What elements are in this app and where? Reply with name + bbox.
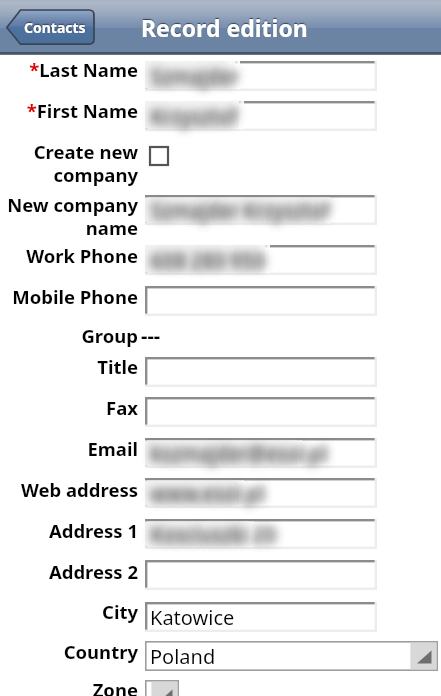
staticText: 608 280 950 [151, 247, 265, 274]
button[interactable]: New company name [145, 195, 377, 225]
staticText: Szmajder [151, 63, 239, 90]
staticText: kszmajder@esol.pl [151, 440, 327, 467]
staticText: Kosciuszki 20 [151, 521, 276, 548]
button[interactable]: Country [145, 641, 438, 671]
staticText: kszmajder@esol.pl [151, 440, 327, 467]
staticText: Web address [0, 477, 138, 502]
button[interactable]: Zone [145, 680, 179, 696]
button[interactable]: Contacts [6, 9, 95, 46]
staticText: Szmajder [151, 63, 239, 90]
staticText: Record edition [141, 12, 308, 43]
button[interactable]: Email [145, 438, 377, 468]
staticText: Contacts [24, 18, 86, 37]
button[interactable]: Fax [145, 397, 377, 427]
button[interactable]: Last Name [145, 61, 377, 91]
button[interactable]: Work Phone [145, 245, 377, 275]
staticText: Szmajder Krzysztof [151, 197, 329, 224]
staticText: Kosciuszki 20 [151, 521, 276, 548]
staticText: Krzysztof [151, 103, 237, 130]
staticText: *First Name [0, 98, 138, 123]
staticText: Poland [150, 643, 216, 670]
staticText: Country [0, 639, 138, 664]
staticText: 608 280 950 [151, 247, 265, 274]
staticText: Katowice [150, 604, 235, 631]
button[interactable]: Create new company [150, 147, 168, 165]
staticText: Email [0, 436, 138, 461]
button[interactable]: First Name [145, 101, 377, 131]
staticText: Address 2 [0, 559, 138, 584]
staticText: Group [0, 323, 138, 348]
staticText: *Last Name [0, 57, 138, 82]
staticText: Szmajder Krzysztof [151, 197, 329, 224]
staticText: www.esol.pl [151, 480, 264, 507]
staticText: Fax [0, 395, 138, 420]
staticText: www.esol.pl [151, 480, 264, 507]
staticText: Create new company [0, 139, 138, 188]
staticText: City [0, 599, 138, 624]
button[interactable]: Address 2 [145, 560, 377, 590]
staticText: Mobile Phone [0, 284, 138, 309]
staticText: Szmajder [151, 63, 239, 90]
button[interactable]: Address 1 [145, 519, 377, 549]
staticText: Kosciuszki 20 [151, 521, 276, 548]
staticText: Zone [0, 677, 138, 696]
staticText: Szmajder Krzysztof [151, 197, 329, 224]
button[interactable]: City [145, 602, 377, 632]
staticText: --- [141, 322, 161, 349]
staticText: kszmajder@esol.pl [151, 440, 327, 467]
staticText: Address 1 [0, 518, 138, 543]
staticText: 608 280 950 [151, 247, 265, 274]
staticText: Work Phone [0, 243, 138, 268]
button[interactable]: Web address [145, 478, 377, 508]
staticText: www.esol.pl [151, 480, 264, 507]
button[interactable]: Mobile Phone [145, 286, 377, 316]
staticText: Title [0, 354, 138, 379]
staticText: New company name [0, 192, 138, 241]
button[interactable]: Title [145, 357, 377, 387]
staticText: Krzysztof [151, 103, 237, 130]
staticText: Krzysztof [151, 103, 237, 130]
